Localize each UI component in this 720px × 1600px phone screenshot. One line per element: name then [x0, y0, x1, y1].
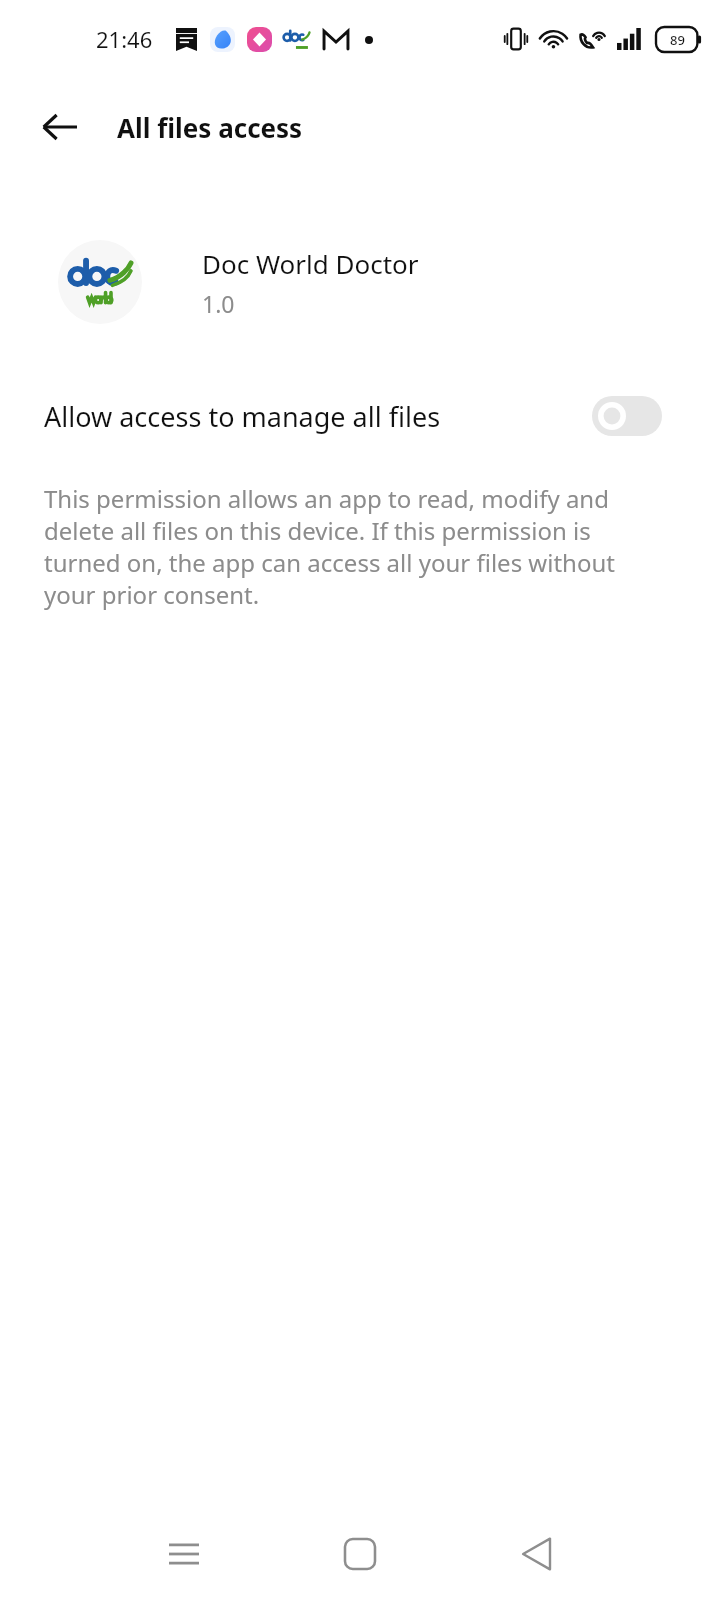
staticText: This permission allows an app to read, m… [44, 482, 658, 611]
staticText: All files access [117, 110, 303, 145]
button[interactable]: Allow access to manage all files toggle [592, 396, 662, 436]
staticText: 1.0 [202, 288, 235, 319]
button[interactable]: Home [316, 1510, 404, 1598]
button[interactable]: Allow access to manage all files [0, 380, 720, 452]
staticText: Allow access to manage all files [44, 398, 592, 435]
staticText: 89 [670, 31, 685, 49]
staticText: 21:46 [96, 24, 153, 54]
button[interactable]: Back [24, 91, 96, 163]
button[interactable]: Back [492, 1510, 580, 1598]
staticText: Doc World Doctor [202, 246, 419, 281]
button[interactable]: Recent apps [140, 1510, 228, 1598]
